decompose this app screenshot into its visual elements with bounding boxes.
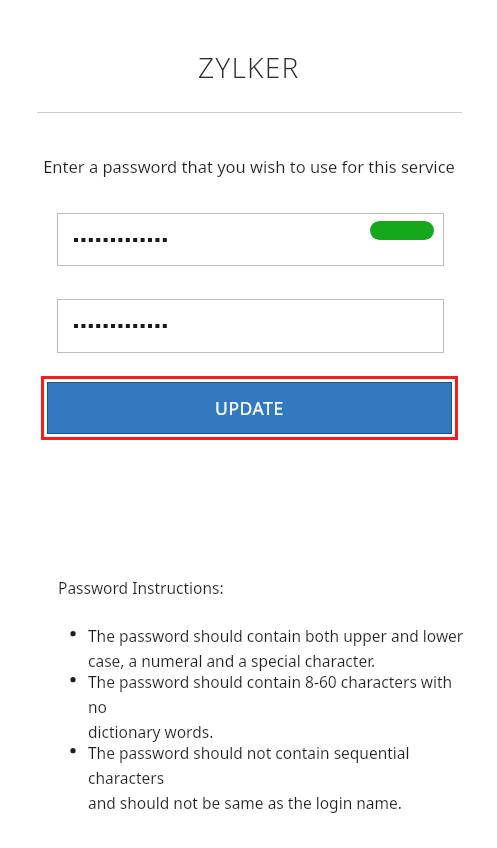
button[interactable] (57, 213, 444, 266)
button[interactable]: UPDATE (48, 383, 451, 433)
staticText: ZYLKER (198, 48, 300, 86)
staticText: The password should not contain sequenti… (88, 742, 475, 813)
staticText: Enter a password that you wish to use fo… (43, 155, 455, 177)
staticText: The password should contain 8-60 charact… (88, 671, 475, 742)
staticText: UPDATE (215, 396, 284, 420)
staticText: Password Instructions: (58, 577, 224, 598)
button[interactable] (57, 299, 444, 353)
staticText: The password should contain both upper a… (88, 625, 464, 671)
